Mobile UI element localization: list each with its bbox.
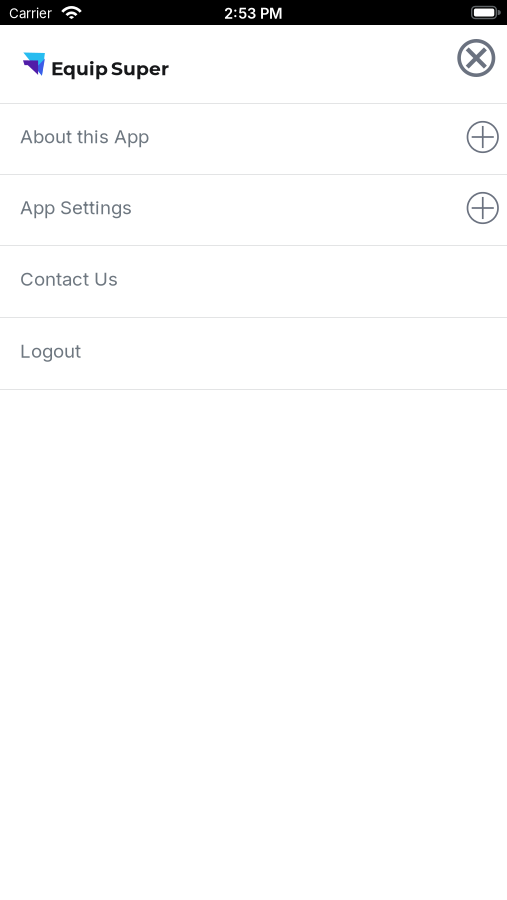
- button[interactable]: App Settings: [0, 175, 507, 245]
- staticText: Super: [111, 57, 169, 80]
- staticText: App Settings: [20, 196, 132, 218]
- staticText: Equip: [51, 57, 108, 80]
- staticText: Contact Us: [20, 268, 118, 290]
- button[interactable]: Logout: [0, 318, 507, 389]
- staticText: Logout: [20, 340, 81, 362]
- button[interactable]: Close: [459, 41, 493, 75]
- staticText: Carrier: [9, 6, 52, 21]
- button[interactable]: Contact Us: [0, 246, 507, 317]
- staticText: 2:53 PM: [224, 5, 283, 22]
- staticText: About this App: [20, 125, 149, 147]
- button[interactable]: About this App: [0, 104, 507, 174]
